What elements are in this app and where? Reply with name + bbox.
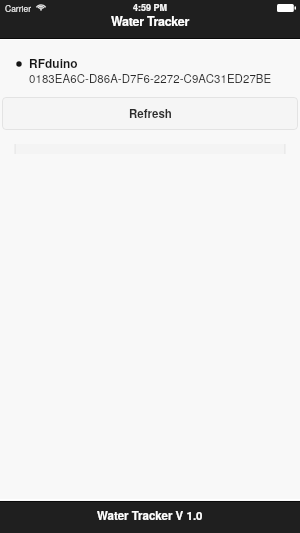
other: Wi-Fi signal xyxy=(36,3,46,11)
other: Battery level xyxy=(277,4,296,12)
staticText: Water Tracker xyxy=(0,12,300,30)
button[interactable]: RFduino xyxy=(8,52,292,88)
staticText: Carrier xyxy=(5,2,31,14)
staticText: RFduino xyxy=(29,54,78,71)
staticText: 4:59 PM xyxy=(0,1,300,14)
staticText: 0183EA6C-D86A-D7F6-2272-C9AC31ED27BE xyxy=(29,70,272,86)
staticText: Refresh xyxy=(129,105,172,121)
button[interactable]: Refresh xyxy=(2,97,298,130)
staticText: Water Tracker V 1.0 xyxy=(97,507,203,523)
